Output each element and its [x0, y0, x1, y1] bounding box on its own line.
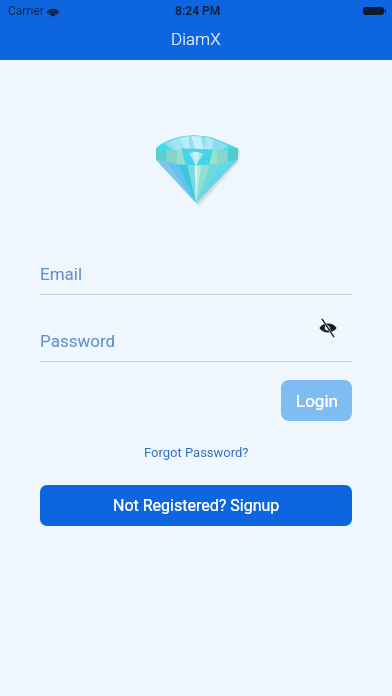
staticText: DiamX: [171, 29, 221, 49]
button[interactable]: Show password: [315, 315, 341, 341]
staticText: Password: [40, 331, 116, 351]
staticText: Email: [40, 264, 83, 284]
button[interactable]: Login: [281, 380, 352, 421]
staticText: 8:24 PM: [175, 4, 221, 18]
staticText: Carrier: [8, 4, 44, 18]
button[interactable]: Forgot Password?: [138, 443, 255, 462]
staticText: Login: [296, 391, 338, 411]
staticText: Not Registered? Signup: [113, 496, 280, 515]
button[interactable]: Not Registered? Signup: [40, 485, 352, 526]
staticText: Forgot Password?: [144, 445, 249, 460]
